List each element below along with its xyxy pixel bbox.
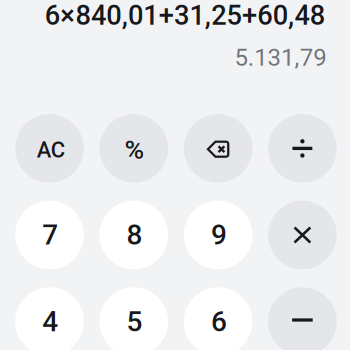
button[interactable]: Multiply — [268, 201, 337, 269]
staticText: 6×840,01+31,25+60,48 — [45, 0, 325, 31]
button[interactable]: 7 — [15, 201, 84, 269]
button[interactable]: 8 — [99, 201, 168, 269]
staticText: % — [125, 134, 145, 165]
button[interactable]: 6 — [184, 287, 252, 350]
button[interactable]: 4 — [15, 287, 84, 350]
button[interactable]: Delete — [184, 114, 252, 183]
button[interactable]: Divide — [268, 114, 337, 183]
staticText: 5.131,79 — [234, 43, 326, 71]
staticText: 7 — [42, 219, 58, 251]
staticText: 6 — [211, 305, 227, 338]
button[interactable]: 9 — [184, 201, 252, 269]
button[interactable]: Minus — [268, 287, 337, 350]
staticText: 5 — [127, 305, 143, 338]
staticText: 4 — [42, 305, 58, 338]
staticText: 9 — [211, 219, 227, 251]
staticText: AC — [37, 137, 65, 163]
button[interactable]: % — [99, 114, 168, 183]
button[interactable]: 5 — [99, 287, 168, 350]
staticText: 8 — [127, 219, 143, 251]
button[interactable]: AC — [15, 114, 84, 183]
